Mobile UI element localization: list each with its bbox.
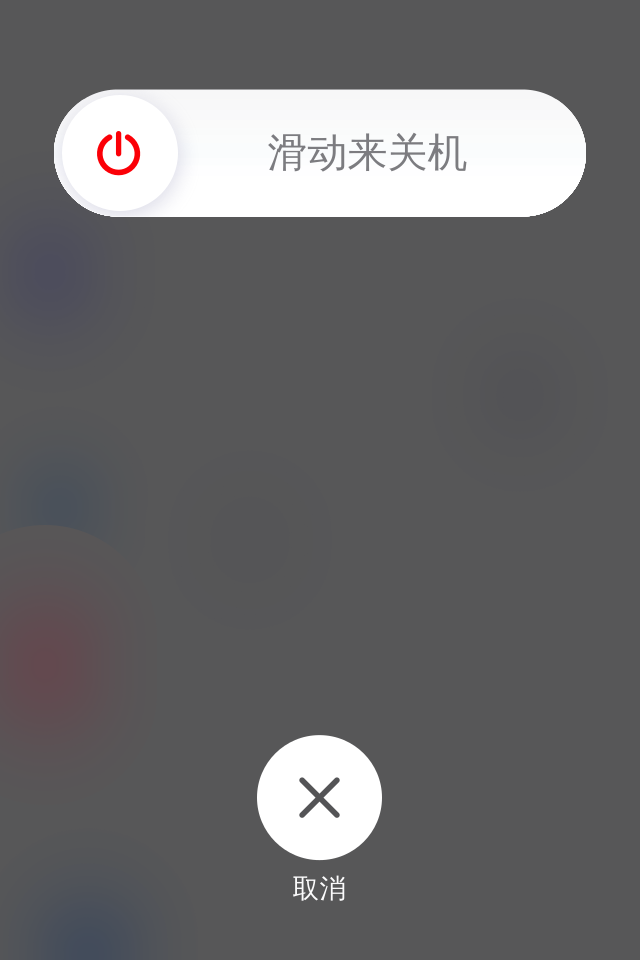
button[interactable]: 取消 xyxy=(257,735,382,905)
button[interactable]: 滑动来关机 xyxy=(54,89,586,216)
staticText: 取消 xyxy=(292,872,346,905)
staticText: 滑动来关机 xyxy=(267,128,467,177)
